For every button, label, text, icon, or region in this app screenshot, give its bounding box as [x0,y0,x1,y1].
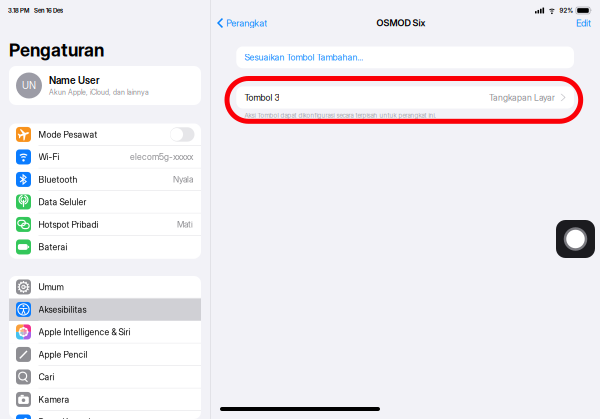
button[interactable]: Data Seluler [9,191,201,213]
staticText: OSMOD Six [376,17,425,28]
staticText: Tombol 3 [244,92,279,103]
staticText: Edit [576,17,591,29]
staticText: Aksesibilitas [38,304,86,315]
staticText: Name User [49,74,100,86]
button[interactable]: Pusat Kontrol [9,411,201,419]
staticText: Umum [38,282,63,292]
staticText: Sen 16 Des [34,7,63,14]
staticText: elecom5g-xxxxx [130,152,193,162]
button[interactable]: Apple Pencil [9,343,201,366]
staticText: Data Seluler [38,197,86,207]
button[interactable]: Perangkat [217,15,267,31]
button[interactable]: Umum [9,276,201,298]
button[interactable]: Apple Intelligence & Siri [9,321,201,343]
staticText: Kamera [38,394,69,405]
staticText: Baterai [38,242,67,252]
button[interactable]: Sesuaikan Tombol Tambahan... [236,46,574,68]
button[interactable]: Edit [557,15,591,31]
staticText: Akun Apple, iCloud, dan lainnya [49,88,149,96]
button[interactable]: Wi-Fi [9,146,201,168]
button[interactable]: Cari [9,366,201,388]
staticText: UN [22,79,36,91]
staticText: Nyala [173,174,193,185]
staticText: Cari [38,372,54,382]
button[interactable]: Aksesibilitas [9,298,201,321]
staticText: 3.18 PM [8,7,29,14]
button[interactable]: Mode Pesawat [9,123,201,146]
staticText: Mati [177,219,193,230]
staticText: Mode Pesawat [38,129,97,140]
button[interactable]: AssistiveTouch [556,220,595,258]
staticText: Pengaturan [9,39,104,61]
button[interactable]: UN [9,66,201,105]
staticText: Pusat Kontrol [38,417,90,419]
staticText: 92% [559,7,573,14]
button[interactable]: Tombol 3 [236,86,574,108]
staticText: Apple Pencil [38,349,87,360]
button[interactable]: Baterai [9,236,201,258]
button[interactable]: Kamera [9,388,201,411]
button[interactable]: Bluetooth [9,168,201,191]
staticText: Sesuaikan Tombol Tambahan... [244,52,363,63]
button[interactable]: Hotspot Pribadi [9,213,201,236]
staticText: Aksi Tombol dapat dikonfigurasi secara t… [244,112,435,119]
staticText: Wi-Fi [38,152,59,162]
staticText: Hotspot Pribadi [38,219,98,230]
staticText: Perangkat [226,17,267,29]
staticText: Bluetooth [38,174,77,185]
staticText: Tangkapan Layar [489,92,555,103]
staticText: Apple Intelligence & Siri [38,327,130,337]
